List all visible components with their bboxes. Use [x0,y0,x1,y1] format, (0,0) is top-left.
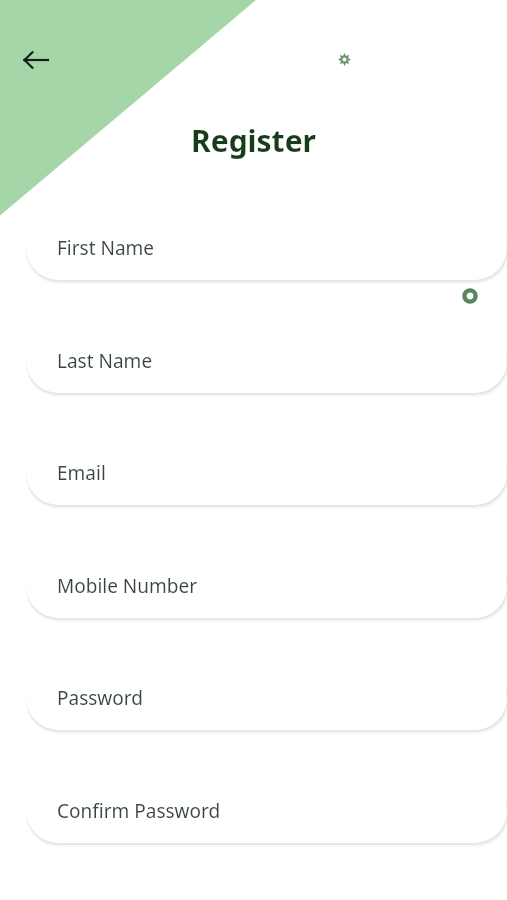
button[interactable]: Last Name [26,328,507,393]
staticText: Confirm Password [57,798,221,824]
button[interactable]: Settings [330,45,358,73]
button[interactable]: Email [26,440,507,505]
staticText: Last Name [57,348,153,374]
staticText: Email [57,460,106,486]
staticText: Register [0,120,507,161]
button[interactable]: Back [12,36,60,84]
staticText: Password [57,685,143,711]
button[interactable]: Indicator [459,285,481,307]
button[interactable]: Password [26,665,507,730]
button[interactable]: Mobile Number [26,553,507,618]
staticText: First Name [57,235,155,261]
staticText: Mobile Number [57,573,198,599]
button[interactable]: First Name [26,215,507,280]
button[interactable]: Confirm Password [26,778,507,843]
